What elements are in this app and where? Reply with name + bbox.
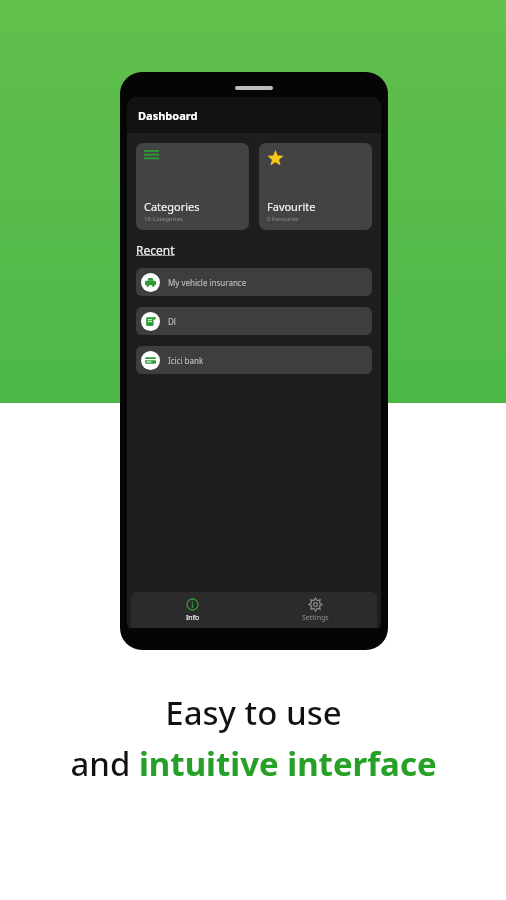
- other: Bank card: [145, 355, 156, 366]
- staticText: Icici bank: [168, 355, 204, 366]
- other: Settings: [309, 598, 322, 611]
- button[interactable]: Vehicle: [136, 268, 372, 296]
- staticText: Dashboard: [138, 108, 198, 123]
- staticText: 0 Favourite: [267, 215, 299, 223]
- staticText: 16 Categories: [144, 215, 183, 223]
- staticText: Recent: [136, 242, 175, 258]
- staticText: Settings: [302, 613, 329, 623]
- button[interactable]: Favourite: [259, 143, 372, 230]
- staticText: Favourite: [267, 199, 316, 214]
- staticText: My vehicle insurance: [168, 277, 247, 288]
- staticText: Info: [186, 613, 200, 623]
- button[interactable]: Settings: [254, 592, 377, 628]
- other: Categories: [144, 150, 159, 163]
- staticText: Categories: [144, 199, 200, 214]
- staticText: and intuitive interface: [70, 741, 437, 786]
- other: Document: [145, 316, 156, 327]
- staticText: Dl: [168, 316, 176, 327]
- button[interactable]: Bank card: [136, 346, 372, 374]
- button[interactable]: Categories: [136, 143, 249, 230]
- button[interactable]: Document: [136, 307, 372, 335]
- other: Favourite: [267, 150, 284, 167]
- other: Vehicle: [145, 277, 156, 288]
- button[interactable]: Info: [131, 592, 254, 628]
- other: Info: [186, 598, 199, 611]
- staticText: Easy to use: [165, 690, 342, 735]
